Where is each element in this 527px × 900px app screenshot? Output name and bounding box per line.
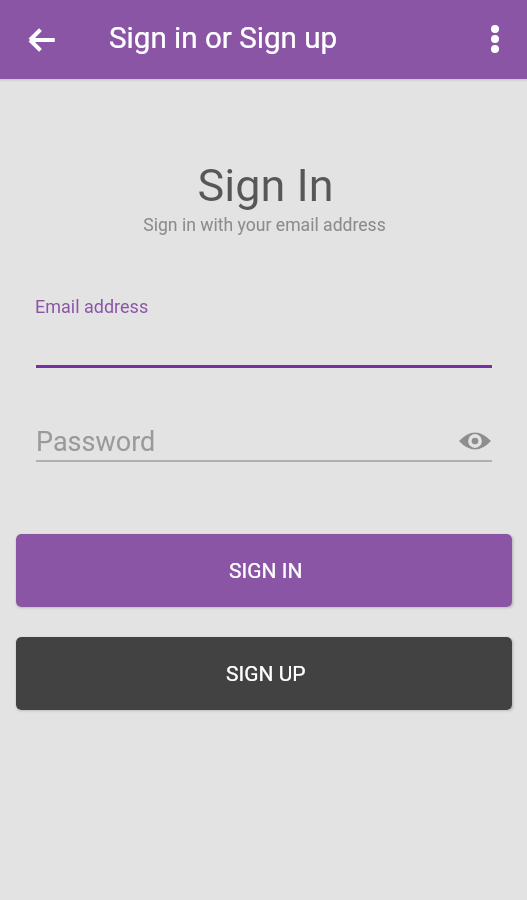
button[interactable]: Password	[36, 415, 492, 462]
button[interactable]: SIGN UP	[16, 637, 512, 710]
button[interactable]: Show password	[452, 420, 498, 462]
staticText: Sign In	[2, 159, 527, 212]
button[interactable]: Email address	[36, 290, 492, 368]
staticText: Email address	[35, 296, 149, 317]
button[interactable]: SIGN IN	[16, 534, 512, 607]
staticText: SIGN IN	[229, 559, 303, 584]
staticText: Sign in or Sign up	[109, 21, 338, 56]
staticText: Password	[36, 426, 156, 458]
staticText: SIGN UP	[226, 662, 306, 687]
staticText: Sign in with your email address	[1, 215, 527, 236]
button[interactable]: More options	[471, 15, 519, 63]
button[interactable]: Navigate back	[18, 16, 66, 64]
